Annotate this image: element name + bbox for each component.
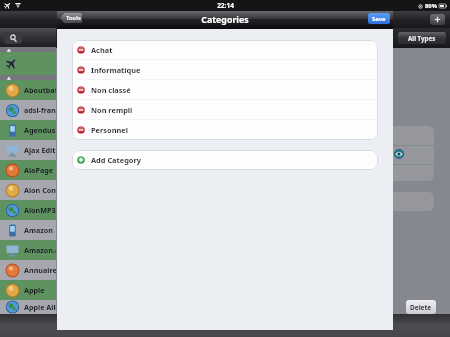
button[interactable]: Search	[4, 32, 22, 44]
button[interactable]: All Types	[398, 32, 446, 44]
staticText: Personnel	[91, 125, 128, 135]
button[interactable]: Amazon	[0, 220, 56, 240]
button[interactable]: Annuaire	[0, 260, 56, 280]
staticText: Alon Cont	[24, 185, 56, 195]
staticText: Tools	[66, 14, 81, 22]
staticText: Apple	[24, 285, 45, 295]
staticText: Save	[372, 15, 386, 23]
button[interactable]: Apple	[0, 280, 56, 300]
button[interactable]: Non rempli	[72, 100, 378, 120]
button[interactable]: Delete	[406, 300, 436, 314]
staticText: AlaPage	[24, 165, 54, 175]
staticText: Add Category	[91, 155, 141, 165]
button[interactable]: Tools	[60, 13, 82, 23]
button[interactable]: Achat	[72, 40, 378, 60]
button[interactable]: Ajax Edit	[0, 140, 56, 160]
staticText: Aboutbatt	[24, 85, 56, 95]
staticText: Amazon	[24, 225, 53, 235]
button[interactable]: Add	[430, 14, 445, 25]
button[interactable]: AlaPage	[0, 160, 56, 180]
button[interactable]: Add Category	[72, 150, 378, 170]
staticText: Apple Alle	[24, 302, 56, 312]
staticText: Delete	[410, 303, 432, 312]
button[interactable]	[0, 52, 56, 75]
button[interactable]: Personnel	[72, 120, 378, 140]
button[interactable]: adsl-franc	[0, 100, 56, 120]
button[interactable]: Alon Cont	[0, 180, 56, 200]
staticText: adsl-franc	[24, 105, 56, 115]
staticText: A	[7, 75, 11, 80]
staticText: Annuaire	[24, 265, 56, 275]
staticText: Amazon.d	[24, 245, 56, 255]
button[interactable]: Aboutbatt	[0, 80, 56, 100]
staticText: Agendus	[24, 125, 56, 135]
button[interactable]: AlonMP3	[0, 200, 56, 220]
button[interactable]: Non classé	[72, 80, 378, 100]
staticText: Informatique	[91, 65, 141, 75]
staticText: Achat	[91, 45, 113, 55]
button[interactable]: Agendus	[0, 120, 56, 140]
staticText: 80%	[425, 2, 437, 10]
button[interactable]: Amazon.d	[0, 240, 56, 260]
staticText: Categories	[201, 14, 249, 26]
button[interactable]: Save	[368, 13, 390, 24]
button[interactable]: Apple Alle	[0, 300, 56, 314]
staticText: All Types	[408, 34, 436, 42]
staticText: 22:14	[217, 1, 234, 10]
staticText: #	[7, 47, 11, 52]
staticText: Ajax Edit	[24, 145, 56, 155]
staticText: AlonMP3	[24, 205, 56, 215]
staticText: Non classé	[91, 85, 131, 95]
button[interactable]: Informatique	[72, 60, 378, 80]
staticText: Non rempli	[91, 105, 133, 115]
